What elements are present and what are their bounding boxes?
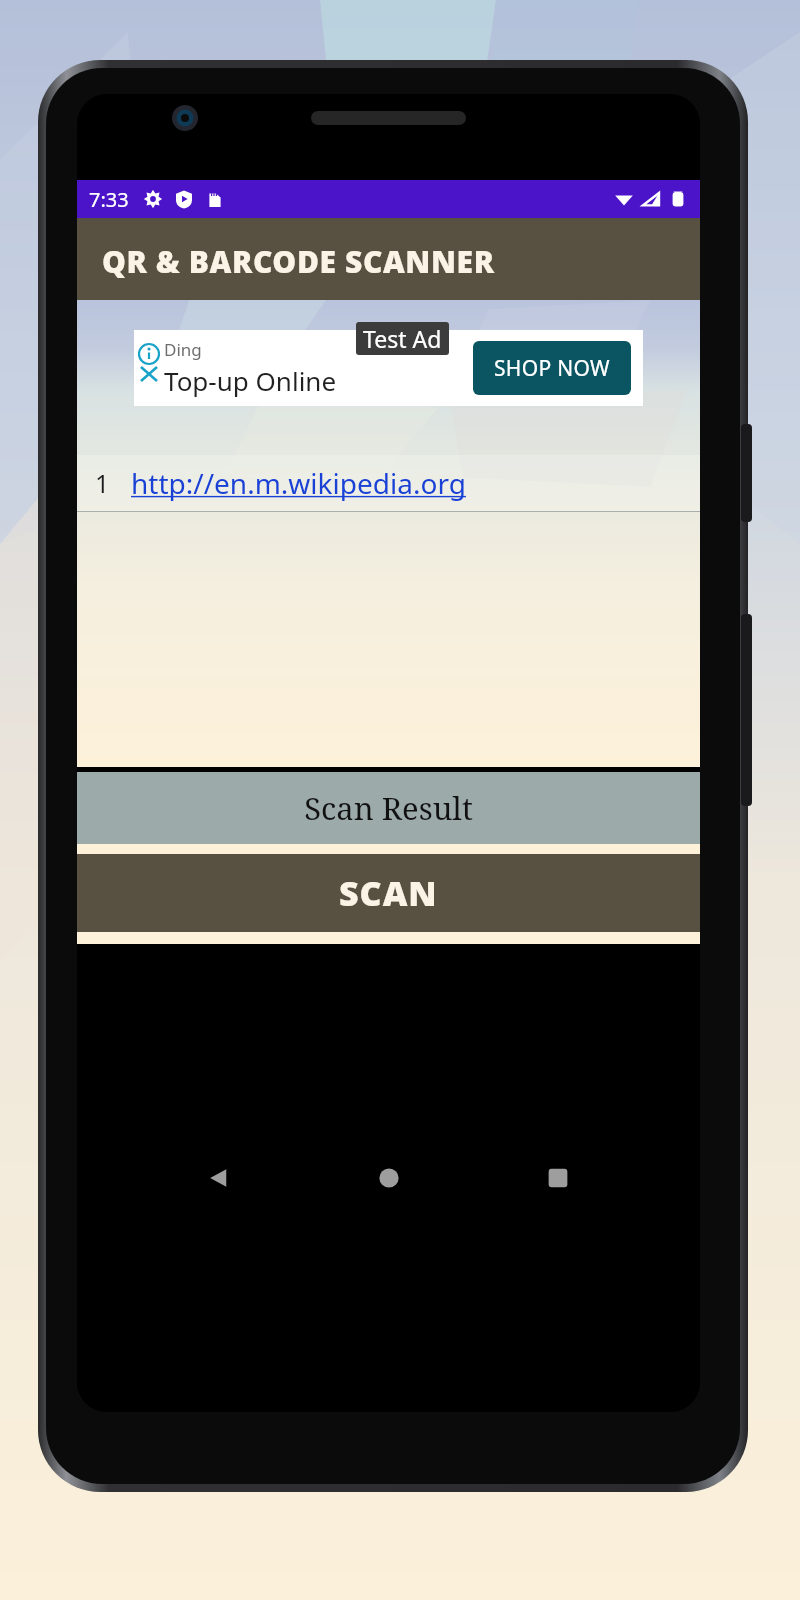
button[interactable]: 1 [77,455,700,511]
staticText: 1 [95,466,110,500]
staticText: http://en.m.wikipedia.org [131,464,466,502]
staticText: Scan Result [304,787,473,829]
staticText: Ding [164,338,202,361]
button[interactable]: SCAN [77,854,700,932]
button[interactable]: QR & BARCODE SCANNER [77,218,700,300]
staticText: Test Ad [363,323,442,354]
button[interactable]: Scan Result [77,772,700,844]
button[interactable]: Back [191,1150,247,1206]
button[interactable]: Recent apps [530,1150,586,1206]
button[interactable]: Home [361,1150,417,1206]
button[interactable]: Ding [134,330,643,406]
staticText: 7:33 [89,186,129,213]
staticText: Top-up Online [164,363,337,398]
staticText: SHOP NOW [494,354,610,383]
staticText: SCAN [339,870,438,916]
staticText: QR & BARCODE SCANNER [102,241,495,282]
button[interactable]: SHOP NOW [473,341,631,395]
